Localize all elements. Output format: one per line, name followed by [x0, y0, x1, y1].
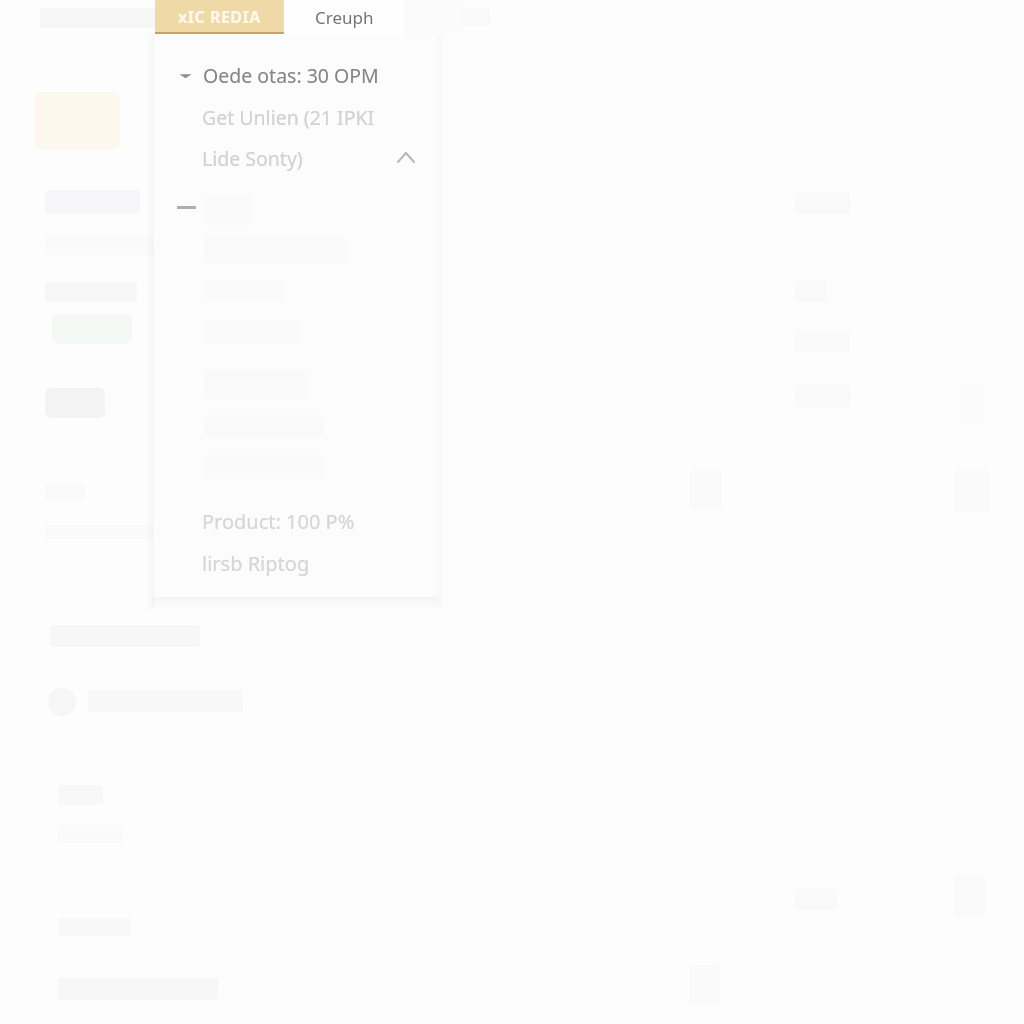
- staticText: Get Unlien (21 IPKI: [202, 104, 375, 131]
- staticText: Lide Sonty): [202, 145, 303, 172]
- staticText: xIC REDIA: [178, 6, 261, 28]
- other: Collapse: [398, 153, 414, 162]
- staticText: Oede otas: 30 OPM: [203, 62, 379, 89]
- button[interactable]: Creuph: [284, 0, 405, 34]
- button[interactable]: xIC REDIA: [155, 0, 284, 34]
- staticText: Product: 100 P%: [202, 508, 355, 535]
- staticText: lirsb Riptog: [202, 550, 310, 577]
- staticText: Creuph: [315, 6, 374, 29]
